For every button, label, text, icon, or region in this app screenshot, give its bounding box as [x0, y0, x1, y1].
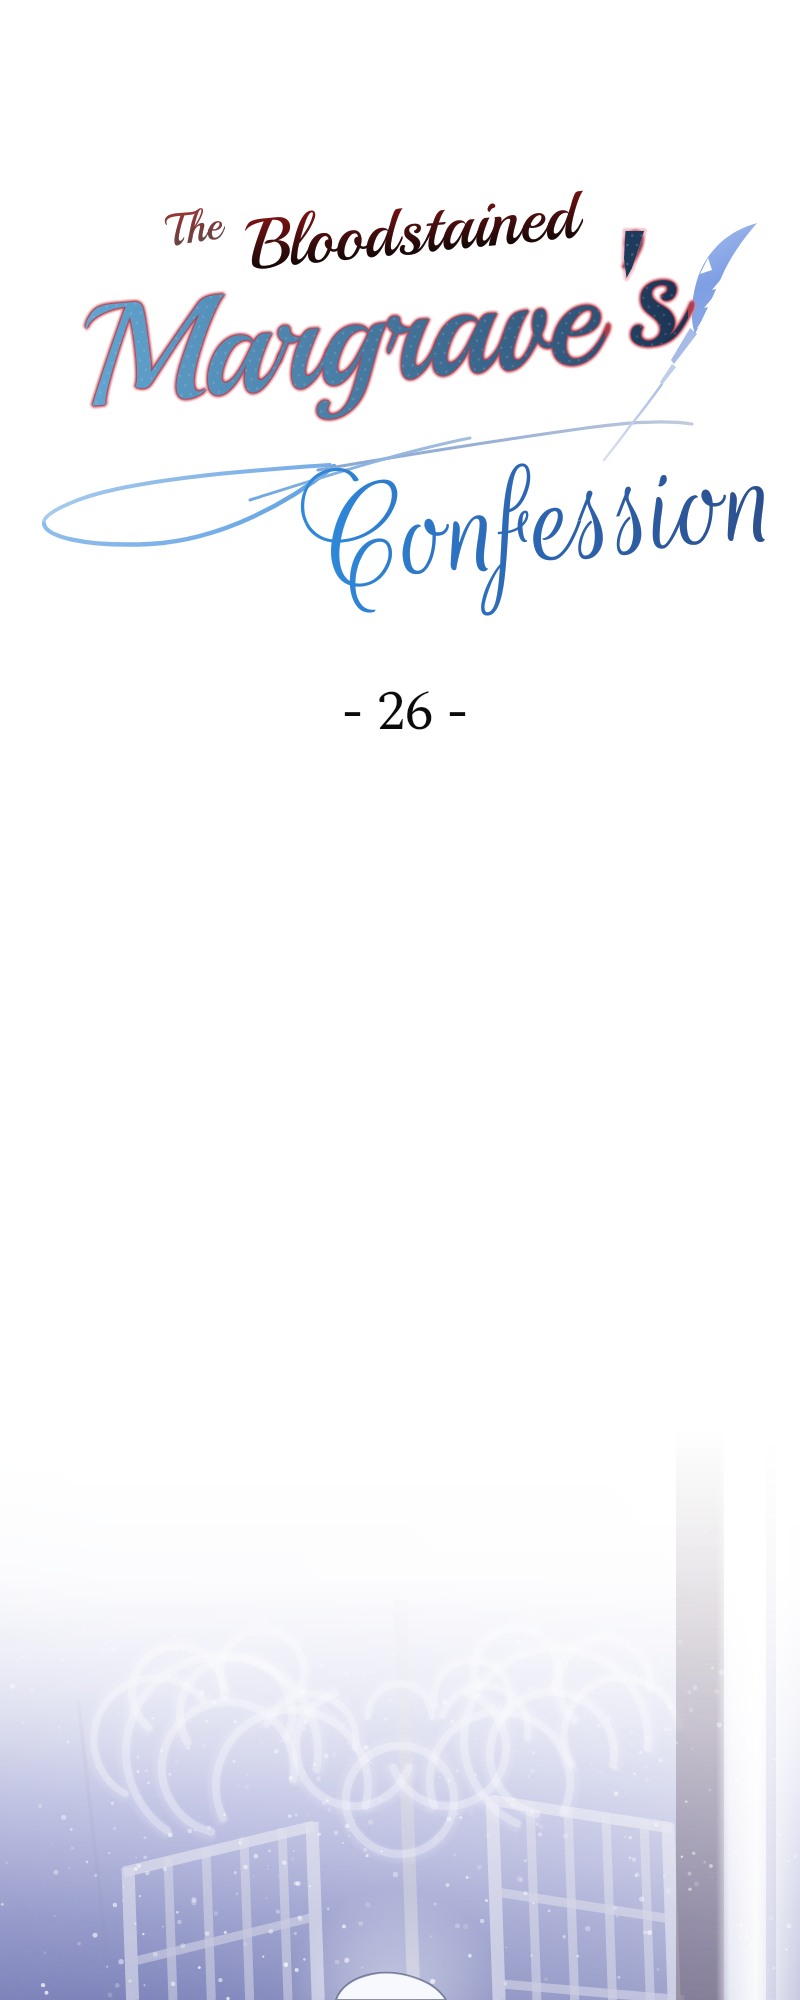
staticText: Margrave	[75, 226, 605, 449]
staticText: Margrave	[77, 228, 607, 451]
staticText: s	[617, 197, 689, 386]
staticText: s	[619, 200, 691, 389]
staticText: s	[619, 202, 691, 391]
staticText: ’	[606, 193, 646, 383]
staticText: s	[614, 203, 686, 392]
staticText: ’	[601, 196, 641, 386]
staticText: ’	[604, 197, 644, 387]
staticText: Margrave	[73, 229, 603, 452]
staticText: Margrave	[75, 230, 605, 453]
staticText: ’	[602, 193, 642, 383]
staticText: ’	[605, 195, 645, 385]
staticText: Bloodstained	[244, 170, 581, 290]
staticText: Margrave	[76, 226, 606, 449]
staticText: ’	[600, 195, 640, 385]
staticText: s	[617, 199, 689, 388]
staticText: s	[614, 200, 686, 389]
staticText: ’	[601, 194, 641, 384]
staticText: Margrave	[78, 228, 608, 451]
staticText: ’	[607, 197, 647, 387]
staticText: ’	[602, 197, 642, 387]
staticText: Margrave	[75, 223, 605, 446]
staticText: Margrave	[75, 222, 605, 445]
staticText: s	[616, 203, 688, 392]
staticText: ’	[606, 198, 646, 388]
staticText: ’	[604, 193, 644, 383]
staticText: s	[614, 197, 686, 386]
staticText: s	[619, 201, 691, 390]
staticText: s	[615, 197, 687, 386]
staticText: Margrave	[71, 226, 601, 449]
staticText: ’	[601, 197, 641, 387]
staticText: ’	[607, 196, 647, 386]
staticText: s	[618, 198, 690, 387]
staticText: s	[613, 200, 685, 389]
staticText: ’	[607, 195, 647, 385]
staticText: ’	[606, 195, 646, 385]
staticText: Margrave	[78, 227, 608, 450]
staticText: Margrave	[74, 225, 604, 448]
staticText: The	[162, 196, 225, 259]
staticText: ’	[604, 194, 644, 384]
staticText: s	[616, 201, 688, 390]
staticText: Margrave	[75, 224, 605, 447]
staticText: ’	[606, 197, 646, 387]
staticText: s	[613, 198, 685, 387]
staticText: s	[615, 201, 687, 390]
staticText: s	[619, 198, 691, 387]
staticText: Margrave	[73, 224, 603, 447]
staticText: Margrave	[75, 225, 605, 448]
staticText: ’	[604, 192, 644, 382]
staticText: Margrave	[74, 229, 604, 452]
staticText: ’	[602, 198, 642, 388]
staticText: Margrave	[72, 225, 602, 448]
staticText: ’	[607, 194, 647, 384]
staticText: Margrave	[76, 225, 606, 448]
staticText: Margrave	[77, 226, 607, 449]
staticText: Margrave	[78, 224, 608, 447]
staticText: s	[618, 202, 690, 391]
staticText: Margrave	[73, 228, 603, 451]
staticText: ’	[602, 192, 642, 382]
staticText: s	[613, 202, 685, 391]
staticText: s	[614, 198, 686, 387]
staticText: ’	[601, 193, 641, 383]
staticText: s	[617, 200, 689, 389]
staticText: Margrave	[73, 226, 603, 449]
staticText: ’	[605, 192, 645, 382]
staticText: s	[619, 199, 691, 388]
staticText: ’	[605, 196, 645, 386]
staticText: ’	[604, 191, 644, 381]
staticText: Margrave	[74, 223, 604, 446]
staticText: ’	[603, 195, 643, 385]
staticText: ’	[605, 194, 645, 384]
staticText: Margrave	[74, 227, 604, 450]
staticText: s	[618, 203, 690, 392]
staticText: ’	[601, 195, 641, 385]
staticText: s	[618, 197, 690, 386]
staticText: Margrave	[79, 226, 609, 449]
staticText: s	[620, 200, 692, 389]
staticText: - 26 -	[342, 670, 468, 755]
staticText: s	[614, 202, 686, 391]
staticText: Margrave	[76, 223, 606, 446]
staticText: s	[616, 200, 688, 389]
staticText: s	[617, 201, 689, 390]
staticText: Margrave	[72, 228, 602, 451]
staticText: s	[615, 199, 687, 388]
staticText: s	[615, 200, 687, 389]
staticText: s	[616, 196, 688, 385]
staticText: ’	[604, 196, 644, 386]
staticText: Margrave	[75, 229, 605, 452]
staticText: ’	[608, 195, 648, 385]
staticText: ’	[604, 199, 644, 389]
staticText: Margrave	[77, 224, 607, 447]
staticText: ’	[604, 195, 644, 385]
staticText: ’	[606, 192, 646, 382]
staticText: Margrave	[77, 223, 607, 446]
staticText: s	[616, 199, 688, 388]
staticText: Margrave	[75, 227, 605, 450]
staticText: Margrave	[72, 226, 602, 449]
staticText: s	[618, 200, 690, 389]
staticText: Margrave	[75, 228, 605, 451]
